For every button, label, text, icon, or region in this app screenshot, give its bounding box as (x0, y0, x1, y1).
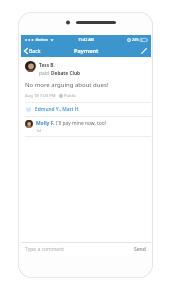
staticText: Public (64, 93, 76, 99)
staticText: paid (39, 70, 51, 77)
button[interactable]: Back (21, 44, 45, 57)
button[interactable]: Molly F. (21, 117, 151, 136)
staticText: Tess B. (39, 62, 55, 69)
button[interactable]: Type a comment (25, 246, 130, 253)
button[interactable]: Edmund Y., Matt H. (21, 103, 151, 116)
staticText: Molly F. (36, 120, 56, 127)
staticText: No more arguing about dues! (25, 81, 109, 89)
staticText: I'll pay mine now, too! (56, 120, 107, 127)
staticText: Edmund Y., Matt H. (35, 106, 80, 113)
staticText: Type a comment (25, 246, 65, 253)
staticText: Verizon (36, 37, 49, 42)
staticText: Aug 18 7:00 PM (25, 93, 56, 99)
staticText: Payment (74, 47, 99, 55)
staticText: 11:42 AM (78, 37, 94, 42)
staticText: 24% (132, 37, 139, 42)
staticText: Debate Club (51, 70, 81, 77)
button[interactable]: Send (133, 244, 147, 255)
button[interactable]: Edit (137, 44, 151, 57)
staticText: Back (29, 47, 41, 54)
staticText: Send (134, 246, 146, 253)
button[interactable]: Tess B. (21, 57, 151, 102)
staticText: 1d (36, 128, 41, 133)
